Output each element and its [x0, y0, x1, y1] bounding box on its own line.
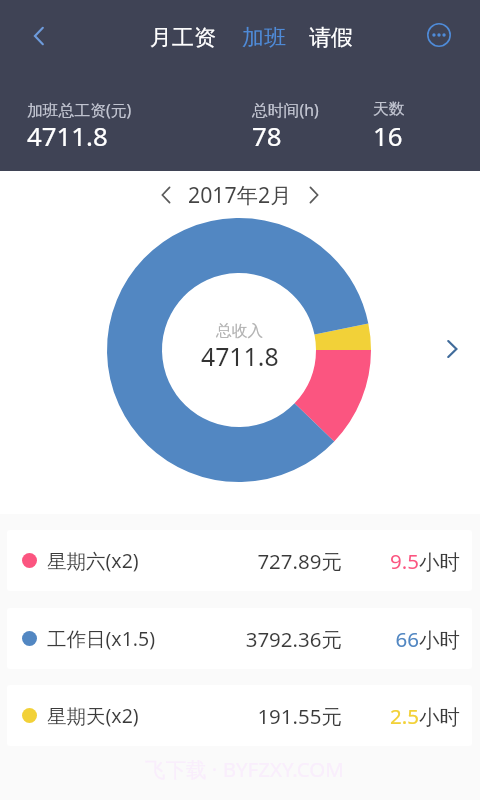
button[interactable]: 星期天(x2) [7, 685, 472, 746]
staticText: 727.89元 [207, 547, 342, 575]
staticText: 加班总工资(元) [27, 99, 132, 121]
staticText: 3792.36元 [207, 625, 342, 653]
button[interactable]: Next month [300, 181, 328, 209]
staticText: 总收入 [216, 321, 264, 341]
staticText: 4711.8 [201, 339, 279, 373]
staticText: 星期天(x2) [47, 702, 139, 729]
button[interactable]: 加班 [236, 19, 292, 57]
staticText: 2017年2月 [188, 180, 292, 209]
button[interactable]: 工作日(x1.5) [7, 608, 472, 669]
staticText: 4711.8 [27, 118, 108, 153]
button[interactable]: Next [434, 331, 470, 367]
staticText: 66小时 [360, 625, 460, 653]
staticText: 天数 [373, 99, 405, 119]
staticText: 78 [252, 118, 282, 153]
staticText: 2.5小时 [360, 702, 460, 730]
staticText: 请假 [309, 24, 353, 52]
button[interactable]: Back [15, 12, 63, 60]
staticText: 工作日(x1.5) [47, 625, 156, 652]
button[interactable]: Income breakdown chart [107, 218, 371, 482]
staticText: 9.5小时 [360, 547, 460, 575]
staticText: 月工资 [150, 24, 216, 52]
staticText: 191.55元 [207, 702, 342, 730]
button[interactable]: Previous month [152, 181, 180, 209]
staticText: 加班 [242, 24, 286, 52]
staticText: 飞下载 · BYFZXY.COM [145, 755, 344, 783]
button[interactable]: 星期六(x2) [7, 530, 472, 591]
button[interactable]: More options [417, 13, 461, 57]
button[interactable]: 月工资 [144, 19, 222, 57]
staticText: 总时间(h) [252, 99, 319, 121]
staticText: 星期六(x2) [47, 547, 139, 574]
button[interactable]: 请假 [303, 19, 359, 57]
staticText: 16 [373, 118, 403, 153]
